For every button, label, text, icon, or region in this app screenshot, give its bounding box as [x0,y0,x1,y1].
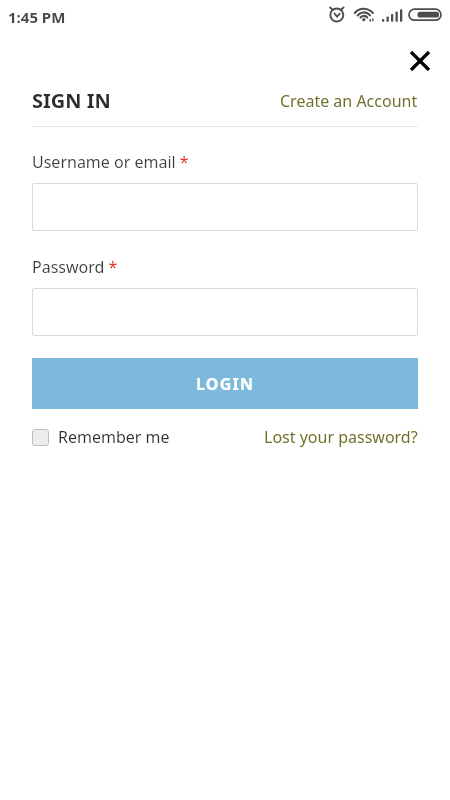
staticText: Password * [32,256,118,278]
staticText: LOGIN [196,373,255,395]
button[interactable]: Lost your password? [264,426,418,448]
button[interactable]: LOGIN [32,358,418,409]
button[interactable]: Remember me [32,426,170,448]
staticText: Remember me [58,426,170,448]
staticText: 1:45 PM [8,7,66,27]
button[interactable] [32,288,418,336]
button[interactable] [404,45,436,77]
staticText: Lost your password? [264,426,418,448]
staticText: Create an Account [280,90,418,112]
button[interactable]: Create an Account [280,90,418,112]
staticText: Username or email * [32,151,189,173]
button[interactable] [32,183,418,231]
staticText: SIGN IN [32,87,111,114]
